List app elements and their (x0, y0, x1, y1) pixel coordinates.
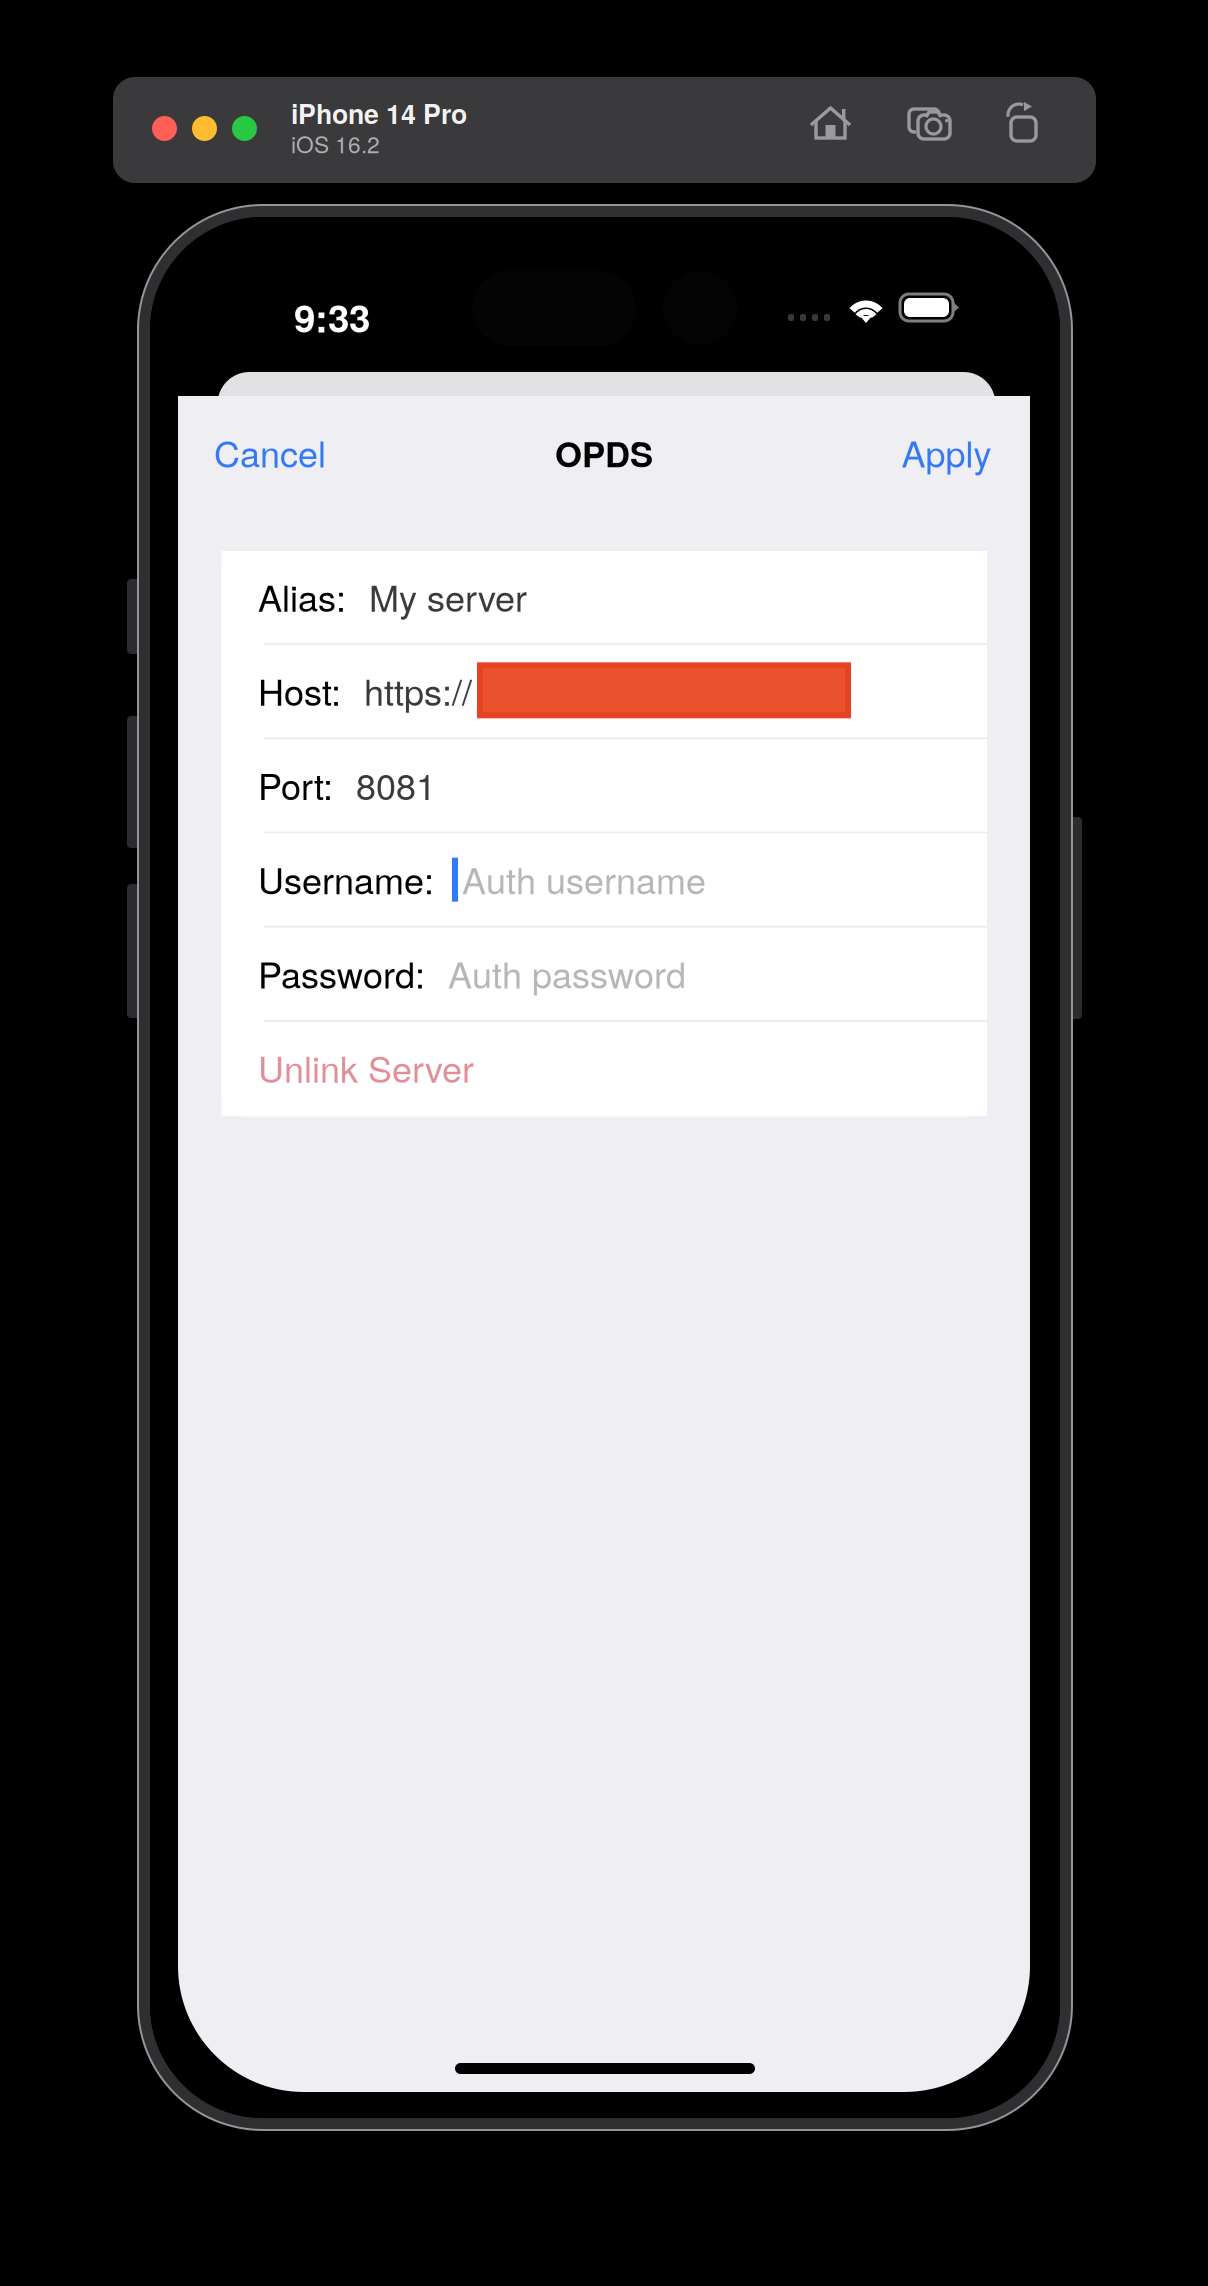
button[interactable]: Screenshot (908, 106, 954, 142)
staticText: Password: (258, 947, 425, 999)
staticText: https:// (364, 664, 472, 716)
staticText: Auth username (462, 853, 706, 904)
button[interactable]: Apply (882, 415, 1011, 489)
staticText: iOS 16.2 (291, 127, 380, 160)
button[interactable]: Unlink Server (221, 1022, 987, 1116)
button[interactable]: Home (810, 106, 854, 142)
button[interactable]: Zoom (232, 116, 257, 141)
staticText: 8081 (356, 759, 436, 810)
staticText: Alias: (258, 570, 346, 622)
button[interactable]: Cancel (197, 415, 342, 489)
staticText: iPhone 14 Pro (291, 94, 467, 132)
button[interactable]: Minimise (192, 116, 217, 141)
staticText: 9:33 (294, 289, 370, 344)
staticText: My server (369, 570, 527, 622)
staticText: Username: (258, 853, 434, 904)
staticText: Auth password (448, 947, 686, 999)
staticText: Apply (901, 426, 991, 478)
staticText: Unlink Server (258, 1041, 474, 1093)
staticText: Host: (258, 664, 341, 716)
staticText: OPDS (555, 428, 653, 478)
button[interactable]: Rotate (1003, 102, 1039, 142)
staticText: Cancel (214, 426, 326, 478)
button[interactable]: Close (152, 116, 177, 141)
staticText: Port: (258, 759, 333, 810)
